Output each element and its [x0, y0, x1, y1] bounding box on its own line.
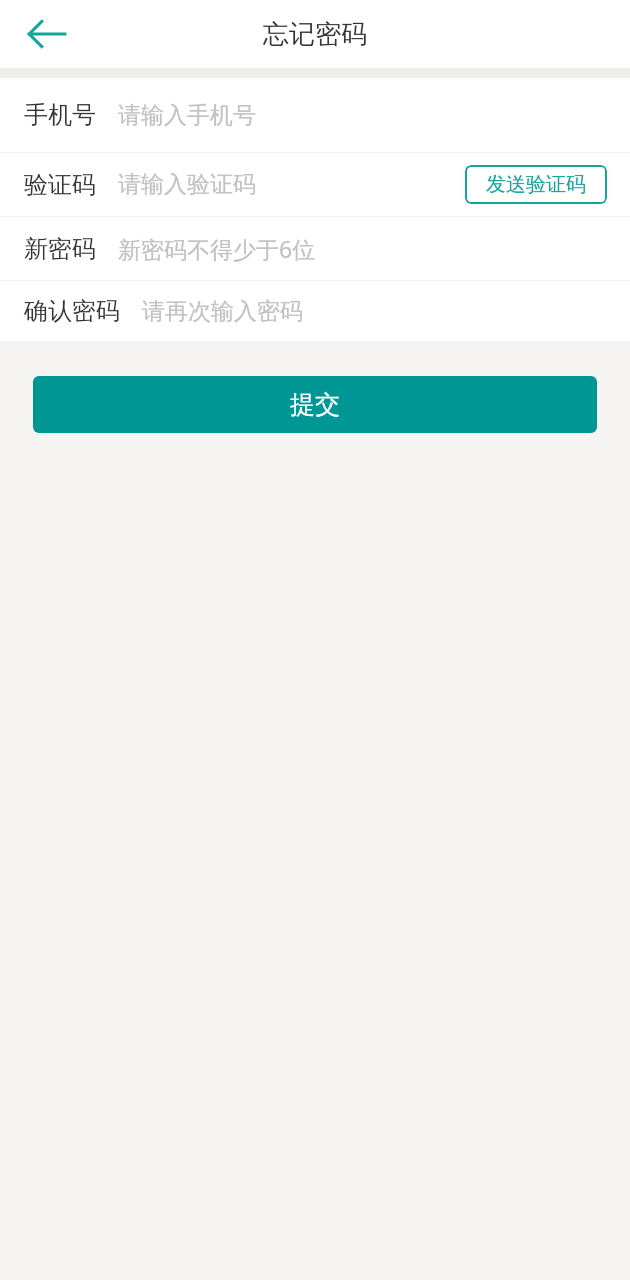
staticText: 忘记密码	[263, 18, 367, 51]
button[interactable]: 新密码	[0, 217, 630, 280]
staticText: 发送验证码	[486, 172, 586, 197]
staticText: 确认密码	[24, 296, 120, 326]
staticText: 新密码	[24, 234, 96, 264]
button[interactable]: 验证码	[0, 153, 630, 216]
staticText: 请输入手机号	[118, 101, 256, 130]
staticText: 请再次输入密码	[142, 297, 303, 326]
staticText: 提交	[290, 389, 340, 420]
button[interactable]: 手机号	[0, 78, 630, 152]
staticText: 新密码不得少于6位	[118, 233, 316, 264]
button[interactable]: Back	[14, 2, 78, 66]
button[interactable]: 确认密码	[0, 281, 630, 341]
button[interactable]: 发送验证码	[465, 165, 607, 204]
staticText: 请输入验证码	[118, 170, 256, 199]
staticText: 验证码	[24, 170, 96, 200]
button[interactable]: 提交	[33, 376, 597, 433]
staticText: 手机号	[24, 100, 96, 130]
